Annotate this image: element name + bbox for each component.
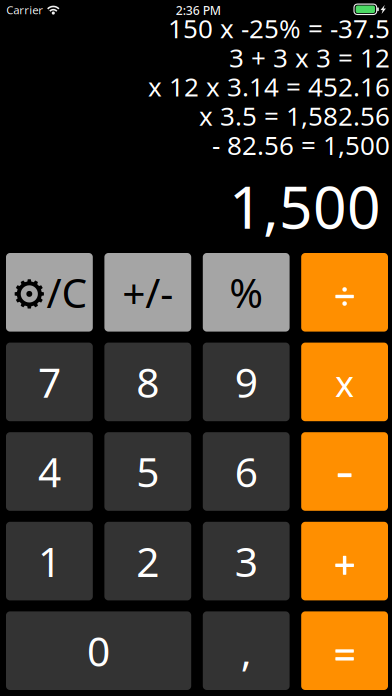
button[interactable]: 2 <box>104 522 191 600</box>
staticText: x 12 x 3.14 = 452.16 <box>148 69 390 104</box>
staticText: 6 <box>235 444 258 499</box>
button[interactable]: 6 <box>203 432 290 511</box>
staticText: 1 <box>38 533 61 589</box>
staticText: 8 <box>136 354 159 410</box>
button[interactable]: Multiply <box>301 343 388 421</box>
button[interactable]: % <box>203 253 290 332</box>
staticText: - 82.56 = 1,500 <box>212 127 390 163</box>
button[interactable]: Subtract <box>301 432 388 511</box>
button[interactable]: 5 <box>104 432 191 511</box>
staticText: 7 <box>38 354 61 410</box>
button[interactable]: 7 <box>6 343 93 421</box>
button[interactable]: 9 <box>203 343 290 421</box>
button[interactable]: Add <box>301 522 388 600</box>
button[interactable]: Carrier <box>6 2 43 17</box>
button[interactable]: Divide <box>301 253 388 332</box>
staticText: /C <box>47 265 88 320</box>
staticText: Carrier <box>6 2 43 17</box>
button[interactable]: , <box>203 611 290 690</box>
staticText: 2 <box>136 533 159 589</box>
button[interactable]: 3 <box>203 522 290 600</box>
staticText: 4 <box>38 444 61 499</box>
staticText: 3 <box>235 533 258 589</box>
staticText: 2:36 PM <box>176 2 221 18</box>
staticText: 3 + 3 x 3 = 12 <box>229 40 390 75</box>
staticText: 5 <box>136 444 159 499</box>
button[interactable]: Settings and clear <box>6 253 93 332</box>
button[interactable]: 1 <box>6 522 93 600</box>
button[interactable]: +/- <box>104 253 191 332</box>
staticText: 0 <box>87 623 110 678</box>
staticText: 1,500 <box>229 166 381 246</box>
staticText: 150 x -25% = -37.5 <box>168 10 390 46</box>
button[interactable]: 0 <box>6 611 191 690</box>
button[interactable]: 4 <box>6 432 93 511</box>
button[interactable]: 8 <box>104 343 191 421</box>
staticText: x 3.5 = 1,582.56 <box>199 98 390 133</box>
staticText: , <box>241 623 252 678</box>
staticText: +/- <box>122 265 173 320</box>
staticText: % <box>229 265 263 320</box>
button[interactable]: Equals <box>301 611 388 690</box>
staticText: 9 <box>235 354 258 410</box>
staticText: x <box>335 359 354 408</box>
